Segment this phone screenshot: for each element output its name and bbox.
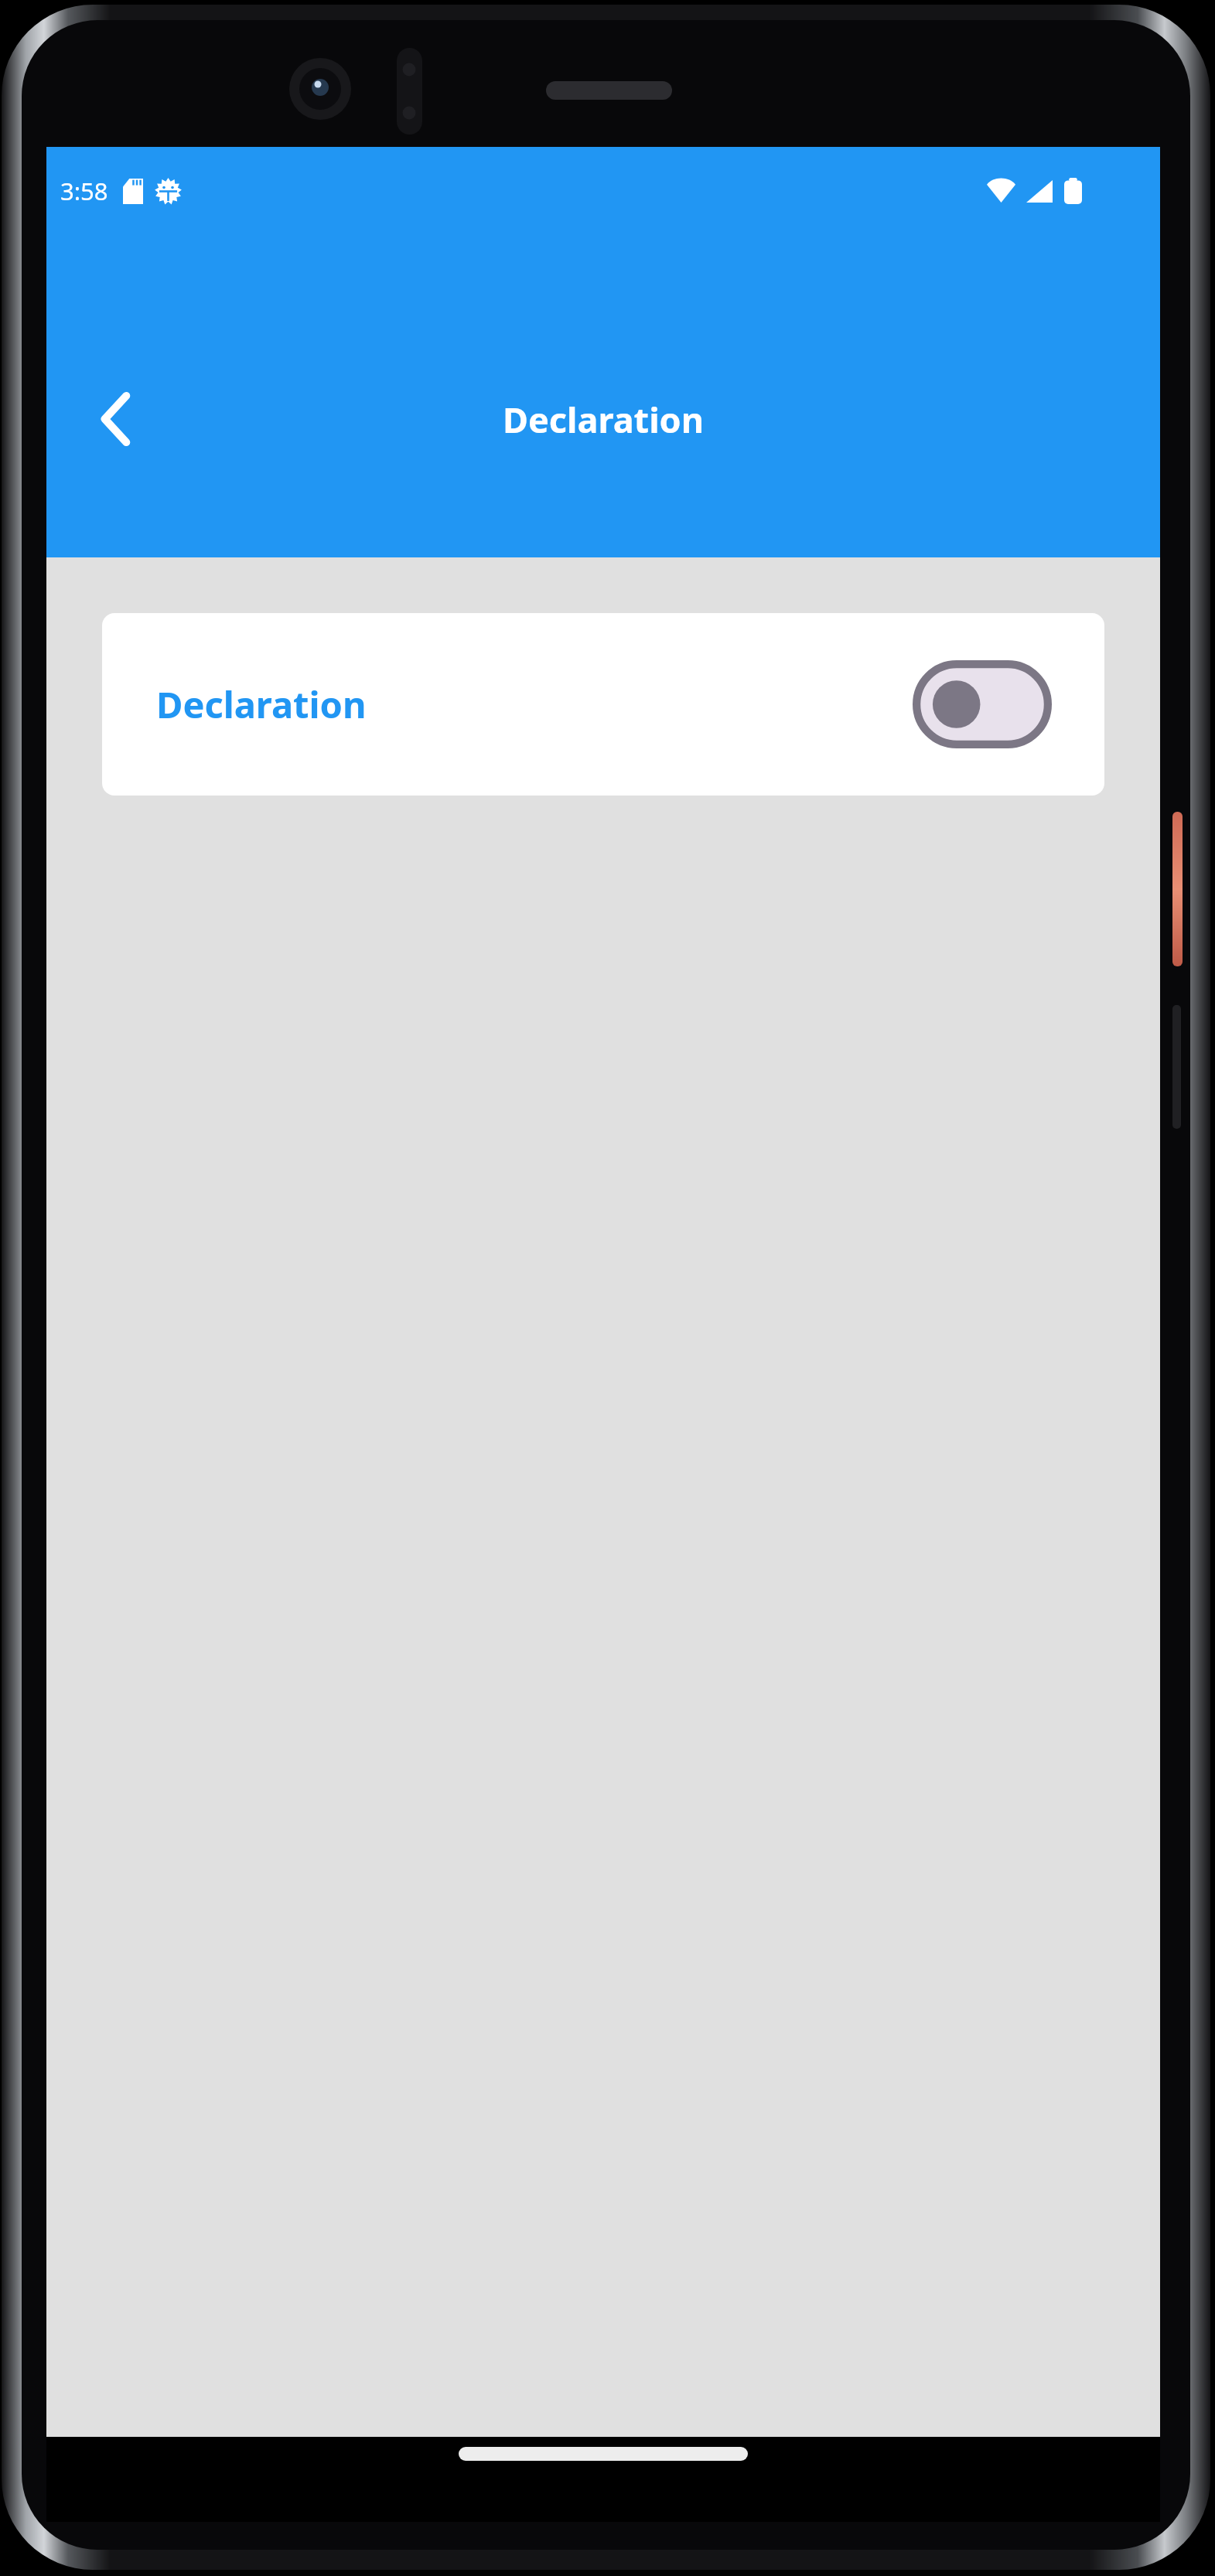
button[interactable]: Back — [73, 376, 159, 462]
staticText: Declaration — [503, 396, 704, 443]
staticText: Declaration — [156, 680, 367, 729]
button[interactable]: Declaration toggle — [913, 660, 1052, 748]
staticText: 3:58 — [60, 175, 108, 207]
button[interactable]: Declaration — [102, 613, 1104, 796]
